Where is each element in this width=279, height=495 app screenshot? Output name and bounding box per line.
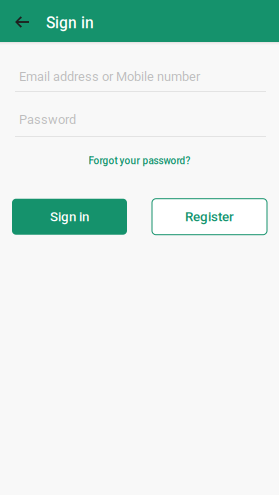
button[interactable]: Forgot your password? <box>0 137 279 199</box>
button[interactable]: Back <box>8 0 37 42</box>
staticText: Forgot your password? <box>88 155 190 167</box>
button[interactable]: Register <box>152 199 267 235</box>
staticText: Register <box>185 209 234 224</box>
staticText: Email address or Mobile number <box>19 69 200 84</box>
staticText: Password <box>19 112 76 127</box>
staticText: Sign in <box>46 14 94 32</box>
button[interactable]: Sign in <box>12 199 127 235</box>
button[interactable]: Email address or Mobile number <box>15 45 266 92</box>
button[interactable]: Password <box>15 92 266 137</box>
staticText: Sign in <box>50 209 89 224</box>
